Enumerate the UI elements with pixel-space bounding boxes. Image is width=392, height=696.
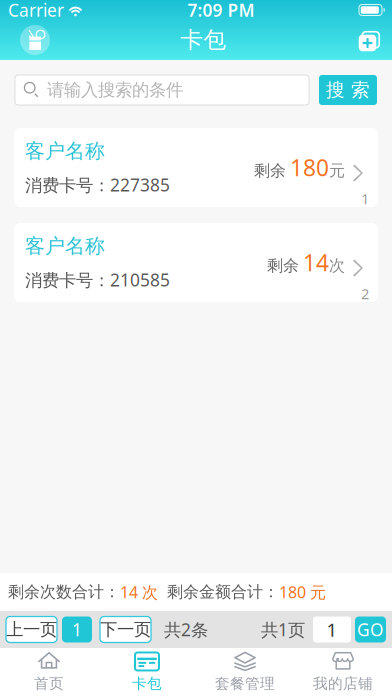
button[interactable]: Add card bbox=[357, 30, 378, 50]
staticText: 消费卡号：210585 bbox=[25, 268, 170, 291]
button[interactable]: 卡包 bbox=[98, 649, 196, 695]
staticText: 卡包 bbox=[132, 674, 162, 692]
staticText: 首页 bbox=[34, 674, 64, 692]
staticText: 客户名称 bbox=[25, 139, 105, 163]
staticText: 剩余 bbox=[254, 161, 286, 181]
staticText: 1 bbox=[361, 189, 369, 208]
staticText: 共2条 bbox=[164, 618, 208, 641]
staticText: 180 元 bbox=[279, 581, 326, 603]
staticText: 剩余 bbox=[267, 256, 299, 276]
staticText: 下一页 bbox=[100, 619, 151, 640]
staticText: 上一页 bbox=[6, 619, 57, 640]
staticText: 消费卡号：227385 bbox=[25, 173, 170, 196]
staticText: 14 bbox=[303, 247, 329, 277]
button[interactable]: 搜 索 bbox=[319, 75, 377, 105]
staticText: 180 bbox=[290, 152, 329, 182]
staticText: 剩余次数合计： bbox=[8, 582, 120, 602]
button[interactable]: 下一页 bbox=[100, 616, 151, 642]
button[interactable]: 1 bbox=[62, 616, 92, 642]
staticText: 剩余金额合计： bbox=[167, 582, 279, 602]
staticText: 请输入搜索的条件 bbox=[47, 79, 183, 101]
button[interactable]: GO bbox=[355, 616, 386, 642]
staticText: 卡包 bbox=[180, 26, 226, 54]
staticText: 2 bbox=[361, 284, 369, 303]
button[interactable]: 我的店铺 bbox=[294, 649, 392, 695]
staticText: GO bbox=[357, 618, 384, 641]
staticText: 7:09 PM bbox=[187, 0, 254, 21]
button[interactable]: 客户名称 bbox=[14, 128, 378, 207]
staticText: 客户名称 bbox=[25, 234, 105, 258]
button[interactable]: 上一页 bbox=[6, 616, 57, 642]
staticText: Carrier bbox=[8, 0, 64, 21]
staticText: 1 bbox=[326, 617, 337, 642]
staticText: 1 bbox=[72, 618, 82, 641]
staticText: 元 bbox=[329, 161, 345, 181]
button[interactable]: 客户名称 bbox=[14, 223, 378, 302]
staticText: 我的店铺 bbox=[313, 674, 373, 692]
button[interactable]: 首页 bbox=[0, 649, 98, 695]
staticText: 次 bbox=[329, 256, 345, 276]
staticText: 搜 索 bbox=[326, 78, 370, 101]
staticText: 套餐管理 bbox=[215, 674, 275, 692]
staticText: 14 次 bbox=[120, 581, 158, 603]
staticText: 共1页 bbox=[261, 618, 305, 641]
button[interactable]: 套餐管理 bbox=[196, 649, 294, 695]
button[interactable]: Brand bbox=[20, 25, 50, 55]
